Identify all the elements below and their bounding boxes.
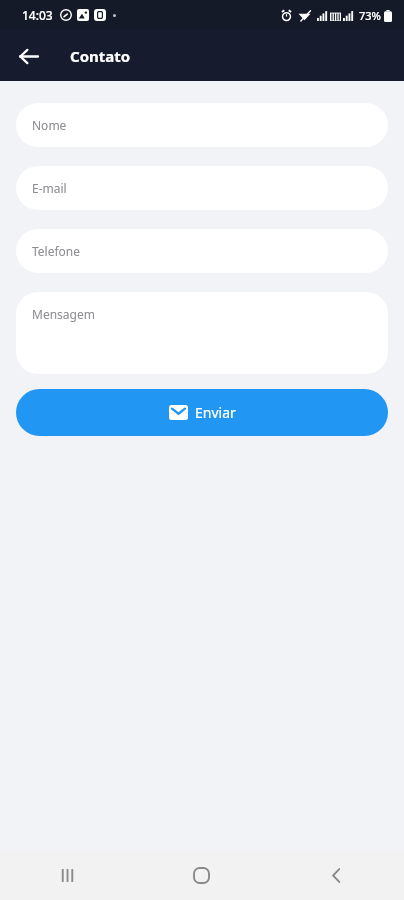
staticText: Nome — [32, 117, 67, 133]
staticText: Telefone — [32, 243, 81, 259]
staticText: 14:03 — [22, 7, 53, 23]
button[interactable]: Telefone — [16, 229, 388, 273]
button[interactable]: Recent apps — [0, 850, 134, 900]
staticText: Contato — [70, 46, 131, 66]
button[interactable]: Back — [269, 850, 404, 900]
staticText: Enviar — [195, 403, 236, 422]
button[interactable]: Nome — [16, 103, 388, 147]
button[interactable]: Enviar — [16, 389, 388, 436]
staticText: 73% — [359, 8, 381, 23]
button[interactable]: Mensagem — [16, 292, 388, 374]
button[interactable]: Home — [134, 850, 269, 900]
staticText: E-mail — [32, 180, 67, 196]
button[interactable]: E-mail — [16, 166, 388, 210]
staticText: Mensagem — [32, 306, 95, 322]
button[interactable]: Back — [10, 38, 46, 74]
